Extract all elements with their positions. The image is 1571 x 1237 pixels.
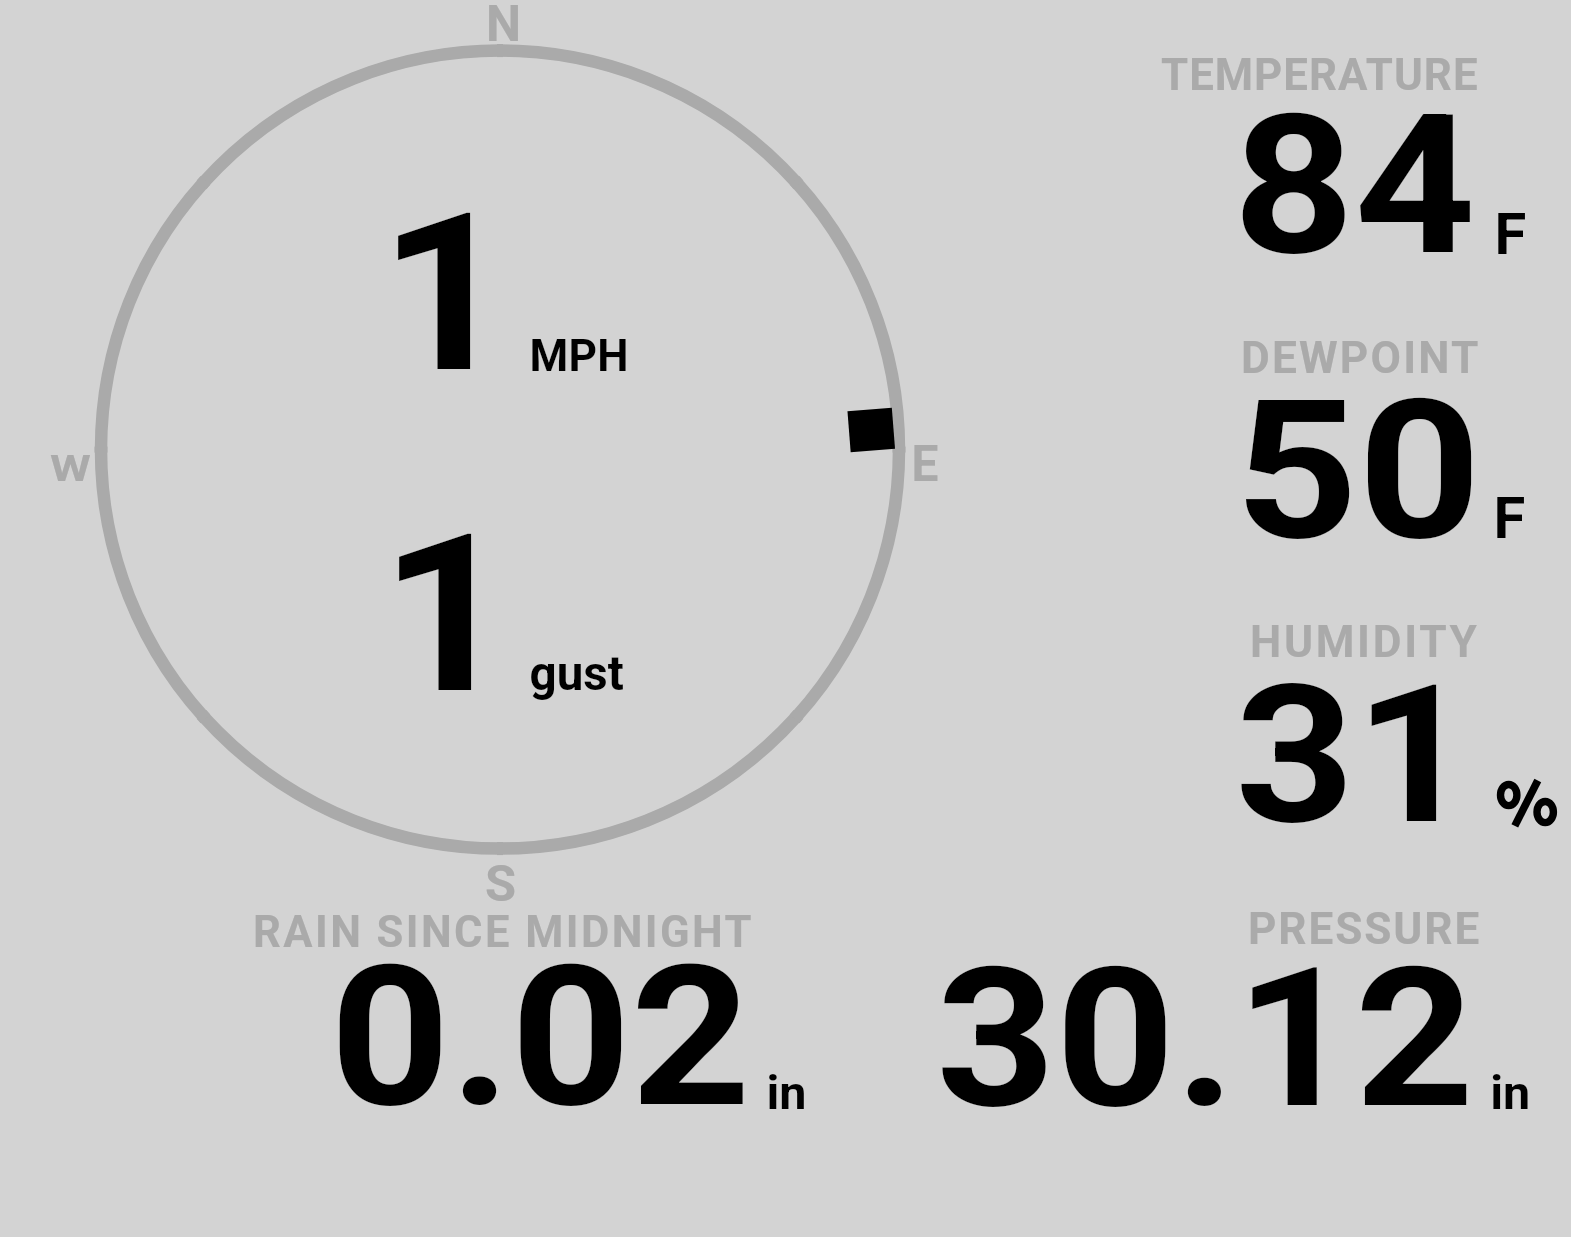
button[interactable]: Humidity 31 percent — [1100, 605, 1571, 885]
button[interactable]: Wind compass, 1 MPH, gust 1, from the ea… — [0, 0, 960, 900]
button[interactable]: Rain since midnight 0.02 in — [240, 895, 820, 1125]
button[interactable]: Pressure 30.12 in — [900, 895, 1560, 1125]
button[interactable]: Dewpoint 50 degrees F — [1100, 320, 1571, 600]
button[interactable]: Temperature 84 degrees F — [1100, 30, 1571, 310]
